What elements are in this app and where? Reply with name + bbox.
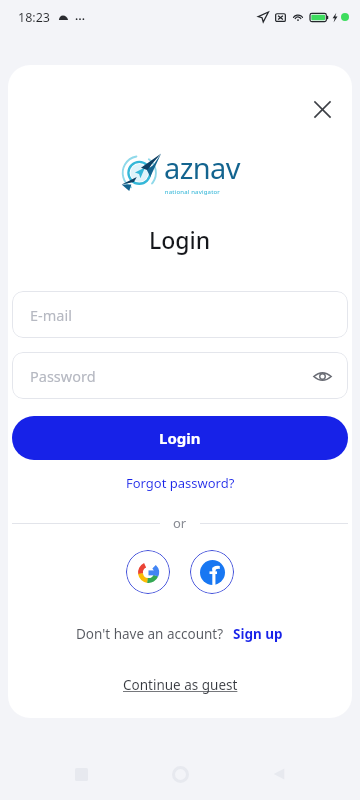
staticText: national navigator (164, 188, 220, 196)
button[interactable]: Login (12, 416, 348, 460)
staticText: Don't have an account? (76, 625, 224, 643)
button[interactable]: Recents (63, 756, 99, 792)
staticText: E-mail (30, 305, 72, 325)
button[interactable]: Close (306, 93, 338, 125)
staticText: Login (159, 428, 201, 448)
staticText: Forgot password? (126, 474, 235, 492)
button[interactable]: Sign in with Google (126, 550, 170, 594)
staticText: 18:23 (18, 9, 50, 26)
staticText: Password (30, 366, 96, 386)
staticText: aznav (164, 148, 240, 187)
staticText: Login (149, 224, 211, 255)
button[interactable]: E-mail (12, 291, 348, 338)
staticText: or (173, 514, 187, 532)
button[interactable]: Sign up (231, 622, 285, 646)
button[interactable]: Password (12, 352, 348, 399)
button[interactable]: Home (162, 756, 198, 792)
button[interactable]: Show password (308, 362, 336, 390)
button[interactable]: Continue as guest (115, 673, 246, 697)
button[interactable]: Forgot password? (118, 470, 243, 496)
button[interactable]: Sign in with Facebook (190, 550, 234, 594)
staticText: Continue as guest (123, 676, 238, 694)
staticText: Sign up (233, 625, 283, 643)
